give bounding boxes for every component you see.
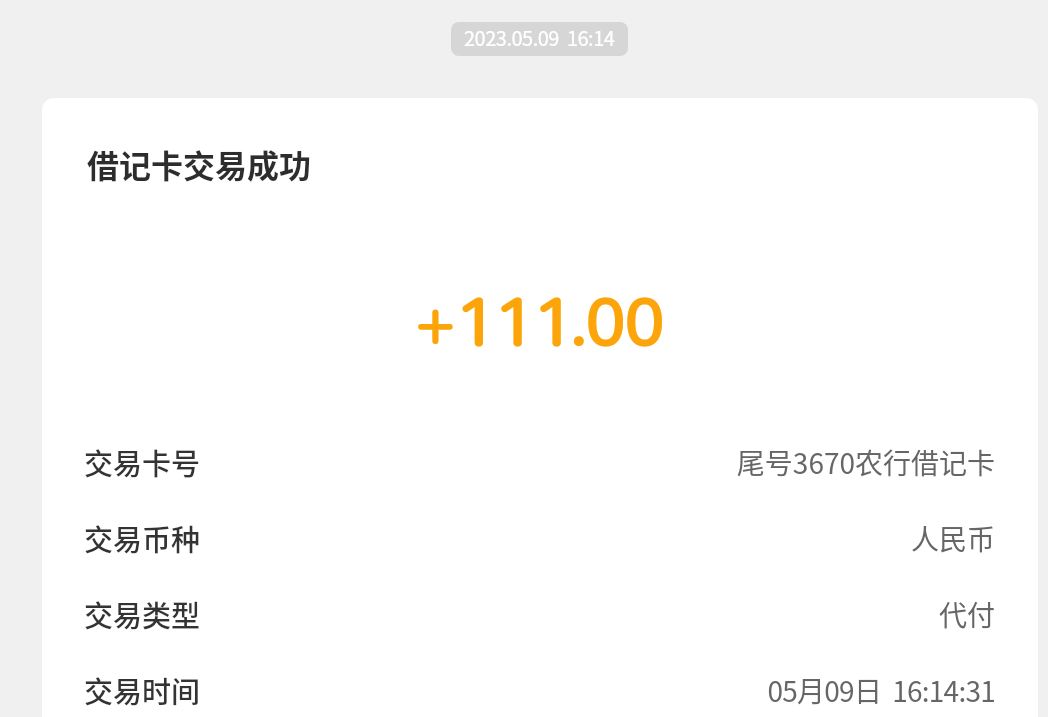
staticText: +111.00: [415, 280, 664, 360]
staticText: 2023.05.09 16:14: [464, 23, 615, 52]
button[interactable]: 交易币种: [84, 500, 995, 576]
staticText: 交易币种: [84, 517, 201, 559]
staticText: 人民币: [910, 518, 995, 559]
staticText: 尾号3670农行借记卡: [736, 442, 995, 483]
staticText: 借记卡交易成功: [87, 141, 312, 187]
staticText: 交易时间: [84, 669, 201, 711]
staticText: 交易卡号: [84, 441, 201, 483]
button[interactable]: 交易时间: [84, 652, 995, 717]
staticText: 05月09日 16:14:31: [767, 670, 995, 711]
staticText: 交易类型: [84, 593, 201, 635]
button[interactable]: 2023.05.09 16:14: [451, 22, 628, 56]
button[interactable]: 交易类型: [84, 576, 995, 652]
staticText: 代付: [938, 594, 995, 635]
button[interactable]: 交易卡号: [84, 424, 995, 500]
